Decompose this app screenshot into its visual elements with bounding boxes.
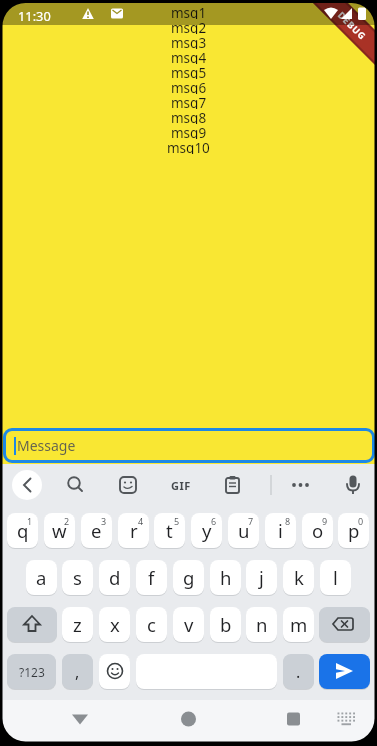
button[interactable] xyxy=(12,470,42,500)
staticText: . xyxy=(296,661,301,683)
staticText: v xyxy=(184,612,194,637)
staticText: p xyxy=(348,518,360,543)
staticText: f xyxy=(148,565,155,590)
staticText: z xyxy=(73,612,82,637)
staticText: l xyxy=(333,565,338,590)
button[interactable]: e xyxy=(81,513,112,548)
button[interactable]: , xyxy=(62,654,93,689)
button[interactable] xyxy=(273,702,313,738)
staticText: x xyxy=(110,612,120,637)
staticText: msg4 xyxy=(171,49,207,64)
staticText: 8 xyxy=(285,515,291,527)
staticText: n xyxy=(256,612,268,637)
staticText: GIF xyxy=(171,478,191,493)
button[interactable]: m xyxy=(283,607,314,642)
button[interactable]: t xyxy=(154,513,185,548)
button[interactable]: f xyxy=(136,560,167,595)
staticText: i xyxy=(278,518,283,543)
staticText: 11:30 xyxy=(18,7,51,24)
button[interactable]: p xyxy=(338,513,369,548)
button[interactable] xyxy=(113,475,143,505)
button[interactable]: . xyxy=(283,654,314,689)
button[interactable]: c xyxy=(136,607,167,642)
button[interactable]: i xyxy=(265,513,296,548)
button[interactable]: s xyxy=(62,560,93,595)
button[interactable]: h xyxy=(210,560,241,595)
button[interactable] xyxy=(319,654,370,689)
button[interactable]: x xyxy=(99,607,130,642)
button[interactable]: a xyxy=(26,560,57,595)
staticText: 4 xyxy=(138,515,144,527)
button[interactable] xyxy=(60,702,100,738)
button[interactable]: w xyxy=(44,513,75,548)
button[interactable] xyxy=(168,702,208,738)
staticText: msg2 xyxy=(171,19,207,34)
staticText: DEBUG xyxy=(336,9,369,42)
button[interactable]: v xyxy=(173,607,204,642)
staticText: b xyxy=(220,612,232,637)
staticText: Message xyxy=(17,436,76,455)
button[interactable]: b xyxy=(210,607,241,642)
staticText: w xyxy=(52,518,67,543)
staticText: msg8 xyxy=(171,109,207,124)
staticText: y xyxy=(202,518,212,543)
staticText: , xyxy=(75,661,80,683)
staticText: msg1 xyxy=(171,4,207,19)
staticText: 7 xyxy=(248,515,254,527)
button[interactable]: o xyxy=(302,513,333,548)
staticText: 6 xyxy=(211,515,217,527)
staticText: msg6 xyxy=(171,79,207,94)
button[interactable]: ?123 xyxy=(7,654,56,689)
button[interactable]: u xyxy=(228,513,259,548)
button[interactable]: Message xyxy=(3,428,375,463)
staticText: h xyxy=(220,565,232,590)
button[interactable]: d xyxy=(99,560,130,595)
button[interactable]: k xyxy=(283,560,314,595)
staticText: e xyxy=(91,518,102,543)
button[interactable]: GIF xyxy=(167,477,194,493)
button[interactable] xyxy=(7,607,57,642)
staticText: msg5 xyxy=(171,64,207,79)
button[interactable]: z xyxy=(62,607,93,642)
staticText: msg3 xyxy=(171,34,207,49)
staticText: 2 xyxy=(64,515,70,527)
staticText: a xyxy=(36,565,47,590)
button[interactable]: g xyxy=(173,560,204,595)
staticText: 0 xyxy=(358,515,364,527)
button[interactable]: r xyxy=(118,513,149,548)
staticText: ?123 xyxy=(19,664,45,680)
staticText: msg10 xyxy=(167,139,210,154)
staticText: 1 xyxy=(27,515,33,527)
staticText: q xyxy=(17,518,29,543)
staticText: msg7 xyxy=(171,94,207,109)
staticText: u xyxy=(238,518,250,543)
staticText: 9 xyxy=(322,515,328,527)
button[interactable]: j xyxy=(246,560,277,595)
staticText: j xyxy=(259,565,264,590)
staticText: m xyxy=(290,612,308,637)
button[interactable]: q xyxy=(7,513,38,548)
button[interactable] xyxy=(285,475,315,505)
button[interactable] xyxy=(60,475,90,505)
button[interactable]: y xyxy=(191,513,222,548)
staticText: r xyxy=(130,518,138,543)
staticText: k xyxy=(294,565,304,590)
staticText: s xyxy=(73,565,82,590)
button[interactable]: n xyxy=(246,607,277,642)
staticText: g xyxy=(183,565,195,590)
staticText: o xyxy=(312,518,324,543)
staticText: d xyxy=(109,565,121,590)
button[interactable] xyxy=(319,607,370,642)
staticText: 5 xyxy=(174,515,180,527)
button[interactable]: l xyxy=(320,560,351,595)
button[interactable] xyxy=(99,654,130,689)
staticText: t xyxy=(166,518,173,543)
button[interactable] xyxy=(218,475,248,505)
staticText: 3 xyxy=(101,515,107,527)
button[interactable] xyxy=(328,702,364,738)
staticText: c xyxy=(147,612,156,637)
staticText: msg9 xyxy=(171,124,207,139)
button[interactable] xyxy=(338,475,368,505)
